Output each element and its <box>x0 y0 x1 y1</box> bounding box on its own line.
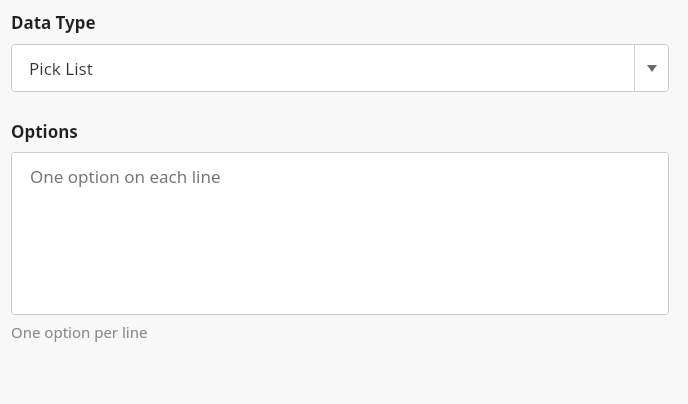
staticText: Options <box>11 120 78 143</box>
button[interactable]: Pick List <box>11 44 669 92</box>
staticText: Pick List <box>29 57 93 80</box>
button[interactable]: Open Data Type list <box>634 44 669 92</box>
staticText: One option on each line <box>30 165 221 188</box>
staticText: Data Type <box>11 11 96 34</box>
staticText: One option per line <box>11 322 148 342</box>
button[interactable]: One option on each line <box>11 152 669 315</box>
